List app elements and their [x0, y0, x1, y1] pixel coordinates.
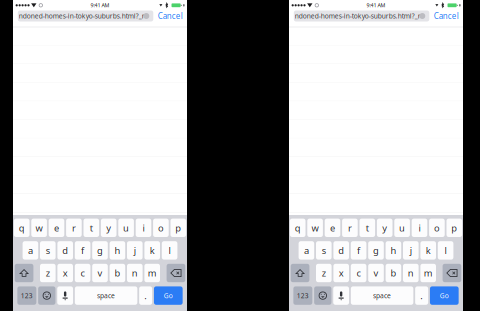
button[interactable]: v: [92, 264, 108, 282]
button[interactable]: d: [333, 241, 349, 260]
button[interactable]: u: [118, 219, 134, 237]
button[interactable]: n: [127, 264, 143, 282]
button[interactable]: Cancel: [433, 9, 459, 22]
button[interactable]: m: [420, 264, 436, 282]
button[interactable]: w: [307, 219, 323, 237]
button[interactable]: t: [83, 219, 99, 237]
staticText: Cancel: [158, 11, 183, 21]
button[interactable]: y: [101, 219, 116, 237]
staticText: r: [72, 222, 76, 234]
button[interactable]: Clear text: [418, 10, 427, 21]
staticText: v: [373, 267, 378, 279]
button[interactable]: g: [92, 241, 108, 260]
button[interactable]: y: [377, 219, 392, 237]
button[interactable]: Emoji: [314, 286, 331, 305]
button[interactable]: a: [23, 241, 38, 260]
button[interactable]: i: [412, 219, 427, 237]
button[interactable]: j: [403, 241, 419, 260]
button[interactable]: Clear text: [142, 10, 151, 21]
button[interactable]: i: [136, 219, 151, 237]
button[interactable]: space: [75, 286, 137, 305]
button[interactable]: j: [127, 241, 143, 260]
button[interactable]: Go: [154, 286, 183, 305]
button[interactable]: d: [57, 241, 73, 260]
button[interactable]: s: [40, 241, 56, 260]
button[interactable]: h: [110, 241, 125, 260]
button[interactable]: Delete: [167, 264, 185, 282]
button[interactable]: z: [316, 264, 332, 282]
button[interactable]: p: [170, 219, 186, 237]
button[interactable]: r: [66, 219, 82, 237]
button[interactable]: l: [162, 241, 177, 260]
button[interactable]: q: [14, 219, 29, 237]
button[interactable]: r: [342, 219, 358, 237]
staticText: a: [304, 244, 309, 257]
button[interactable]: s: [316, 241, 332, 260]
button[interactable]: c: [351, 264, 366, 282]
button[interactable]: .: [415, 286, 428, 305]
button[interactable]: k: [420, 241, 436, 260]
button[interactable]: g: [368, 241, 384, 260]
button[interactable]: l: [438, 241, 453, 260]
button[interactable]: a: [299, 241, 314, 260]
button[interactable]: Cancel: [157, 9, 183, 22]
button[interactable]: z: [40, 264, 56, 282]
button[interactable]: u: [394, 219, 410, 237]
staticText: g: [373, 244, 379, 257]
button[interactable]: q: [290, 219, 305, 237]
button[interactable]: Delete: [443, 264, 461, 282]
button[interactable]: k: [144, 241, 160, 260]
button[interactable]: Dictation: [333, 286, 349, 305]
button[interactable]: space: [351, 286, 413, 305]
button[interactable]: 123: [293, 286, 312, 305]
button[interactable]: v: [368, 264, 384, 282]
button[interactable]: o: [153, 219, 169, 237]
button[interactable]: t: [359, 219, 375, 237]
button[interactable]: e: [49, 219, 64, 237]
button[interactable]: Shift: [15, 264, 33, 282]
button[interactable]: f: [75, 241, 90, 260]
button[interactable]: x: [333, 264, 349, 282]
button[interactable]: o: [429, 219, 445, 237]
button[interactable]: h: [386, 241, 401, 260]
button[interactable]: f: [351, 241, 366, 260]
staticText: p: [451, 222, 457, 234]
button[interactable]: x: [57, 264, 73, 282]
staticText: u: [399, 222, 405, 234]
button[interactable]: w: [31, 219, 47, 237]
button[interactable]: Dictation: [57, 286, 73, 305]
button[interactable]: 123: [17, 286, 36, 305]
button[interactable]: m: [144, 264, 160, 282]
button[interactable]: .: [139, 286, 152, 305]
button[interactable]: p: [446, 219, 462, 237]
button[interactable]: n: [403, 264, 419, 282]
staticText: t: [366, 222, 369, 234]
button[interactable]: b: [386, 264, 401, 282]
button[interactable]: Emoji: [38, 286, 55, 305]
button[interactable]: e: [325, 219, 340, 237]
button[interactable]: c: [75, 264, 90, 282]
button[interactable]: Shift: [291, 264, 309, 282]
button[interactable]: b: [110, 264, 125, 282]
button[interactable]: Go: [430, 286, 459, 305]
